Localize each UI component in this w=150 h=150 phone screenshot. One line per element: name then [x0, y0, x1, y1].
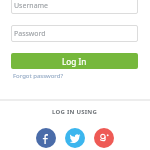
button[interactable]: Log In: [11, 53, 138, 69]
button[interactable]: Username: [11, 0, 138, 14]
button[interactable]: Log in with Google Plus: [94, 128, 114, 148]
staticText: Log In: [62, 56, 87, 67]
staticText: Forgot password?: [13, 72, 64, 80]
staticText: Username: [14, 1, 49, 11]
button[interactable]: Log in with Facebook: [36, 128, 56, 148]
button[interactable]: Log in with Twitter: [65, 128, 85, 148]
staticText: LOG IN USING: [52, 108, 98, 116]
button[interactable]: Forgot password?: [13, 72, 64, 80]
button[interactable]: Password: [11, 25, 138, 42]
staticText: Password: [14, 29, 46, 39]
